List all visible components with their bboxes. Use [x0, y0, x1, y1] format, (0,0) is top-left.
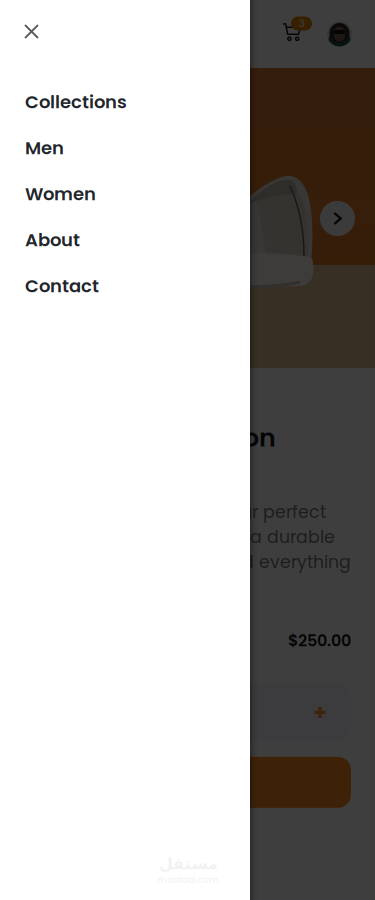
staticText: Essential Collection	[25, 420, 276, 455]
button[interactable]: Cart	[275, 10, 318, 57]
staticText: mostaql.com	[157, 873, 219, 886]
staticText: 3	[298, 16, 304, 31]
button[interactable]: Menu	[8, 12, 52, 56]
button[interactable]: Add to Cart	[25, 757, 351, 808]
button[interactable]: Men	[25, 125, 250, 171]
staticText: everyday shoe. Featuring a durable	[25, 525, 335, 549]
button[interactable]: Account	[318, 12, 361, 55]
staticText: sole, cushioned insole and everything	[25, 550, 351, 574]
staticText: About	[25, 227, 80, 253]
button[interactable]: Women	[25, 171, 250, 217]
button[interactable]: About	[25, 217, 250, 263]
staticText: Women	[25, 181, 96, 207]
staticText: $250.00	[288, 629, 351, 652]
button[interactable]: Collections	[25, 79, 250, 125]
staticText: Men	[25, 135, 64, 161]
button[interactable]: Increase quantity	[305, 697, 335, 727]
button[interactable]: Contact	[25, 263, 250, 309]
staticText: Collections	[25, 89, 127, 115]
button[interactable]: Next image	[310, 191, 365, 246]
staticText: Contact	[25, 273, 99, 299]
staticText: Step into comfort with your perfect	[25, 500, 326, 524]
staticText: مستقل	[158, 854, 217, 873]
button[interactable]: Close menu	[25, 15, 58, 48]
